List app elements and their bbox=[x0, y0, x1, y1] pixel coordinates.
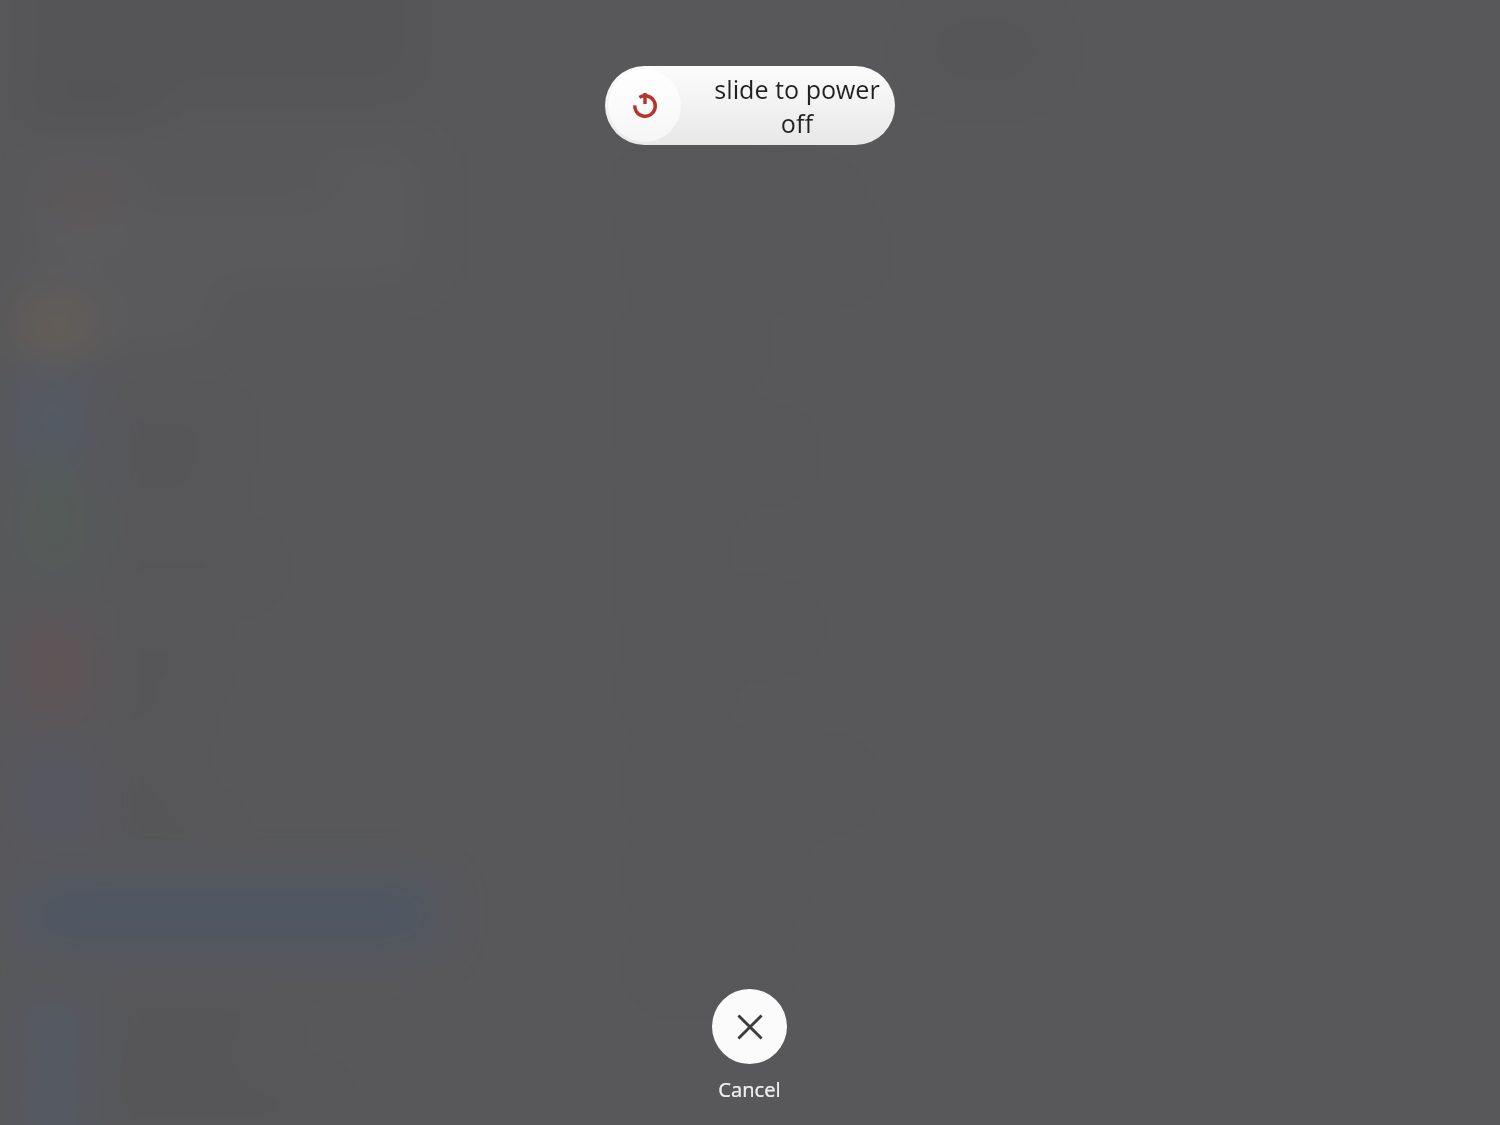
button[interactable]: slide to power off bbox=[605, 66, 895, 145]
staticText: slide to power off bbox=[699, 72, 895, 140]
button[interactable]: Cancel bbox=[712, 989, 787, 1064]
staticText: Cancel bbox=[718, 1076, 781, 1103]
